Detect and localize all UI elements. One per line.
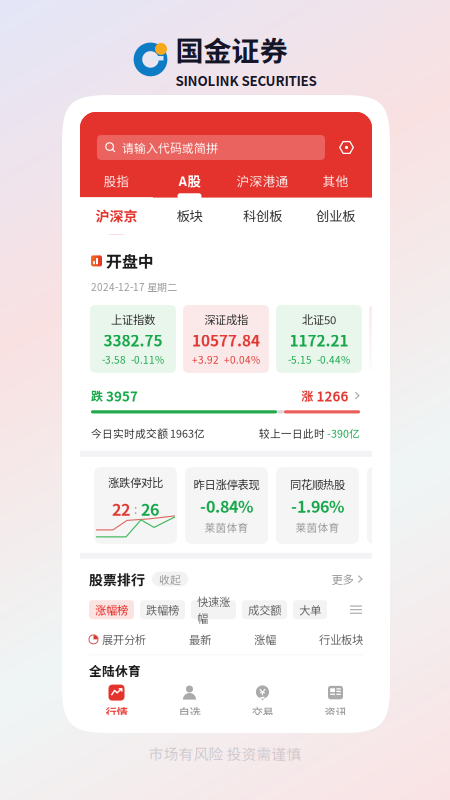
button[interactable]: 更多筛选 [349,603,363,617]
staticText: 涨幅榜 [95,601,128,618]
staticText: 上证指数 [111,311,155,328]
button[interactable]: 行情 [80,685,153,720]
staticText: -1.96% [291,494,344,517]
button[interactable]: 跌幅榜 [140,600,185,619]
staticText: +0.04% [224,352,260,367]
staticText: 26 [141,497,159,520]
staticText: 股指 [103,171,129,190]
button[interactable]: 更多 [331,571,363,587]
staticText: 2024-12-17 星期二 [91,279,177,294]
button[interactable]: 请输入代码或简拼 [97,135,325,160]
button[interactable]: 快速涨幅 [191,600,236,619]
staticText: -0.44% [317,352,350,367]
staticText: 成交额 [248,601,281,618]
staticText: 国金证券 [175,29,287,69]
button[interactable]: 深证成指 [183,305,269,373]
staticText: 创业板 [316,206,355,225]
button[interactable]: 涨幅榜 [89,600,134,619]
staticText: 莱茵体育 [204,519,248,535]
staticText: 涨跌停对比 [108,474,163,490]
staticText: 1266 [313,386,348,405]
staticText: 较上一日此时 [259,425,327,441]
button[interactable]: 同花顺热股 [276,467,359,544]
staticText: 请输入代码或简拼 [122,139,218,156]
button[interactable]: 其他 [299,168,372,199]
staticText: A股 [178,171,200,190]
button[interactable]: 交易 [226,685,299,720]
staticText: : [134,500,137,518]
button[interactable]: 资讯 [299,685,372,720]
button[interactable]: 自选 [153,685,226,720]
staticText: 行业板块 [319,631,363,648]
staticText: 10577.84 [192,329,260,351]
staticText: 3957 [103,386,138,405]
button[interactable]: 板块 [153,198,226,236]
staticText: 更多 [331,571,353,587]
button[interactable]: 设置 [334,135,359,160]
staticText: 昨日涨停表现 [193,476,259,492]
staticText: 股票排行 [89,569,145,589]
staticText: 市场有风险 投资需谨慎 [148,743,301,764]
staticText: 沪深港通 [236,171,288,190]
button[interactable]: A股 [153,168,226,199]
staticText: -5.15 [288,352,312,367]
button[interactable]: 创业板 [299,198,372,236]
staticText: 跌幅榜 [146,601,179,618]
staticText: 行情 [105,704,127,720]
button[interactable]: 北证50 [276,305,362,373]
staticText: -0.84% [200,494,253,517]
staticText: 收起 [159,571,181,587]
staticText: 22 [112,497,130,520]
staticText: 北证50 [302,311,336,328]
staticText: -390亿 [327,425,360,441]
button[interactable]: 展开分析 [89,631,146,648]
staticText: 沪深京 [95,205,137,225]
staticText: 同花顺热股 [290,476,345,492]
staticText: 快速涨幅 [197,593,230,626]
button[interactable]: 成交额 [242,600,287,619]
staticText: 3382.75 [103,329,162,351]
staticText: 莱茵体育 [295,519,339,535]
staticText: 开盘中 [106,249,154,272]
staticText: 深证成指 [204,311,248,328]
button[interactable]: 收起 [152,571,188,586]
button[interactable]: 昨日涨停表现 [185,467,268,544]
button[interactable]: 大单 [293,600,327,619]
staticText: 跌 [91,387,103,404]
staticText: 展开分析 [102,631,146,648]
staticText: -0.11% [131,352,164,367]
button[interactable]: 沪深港通 [226,168,299,199]
button[interactable]: 科创板 [226,198,299,236]
button[interactable]: 股指 [80,168,153,199]
button[interactable]: 沪深京 [80,197,153,236]
staticText: 今日实时成交额 1963亿 [91,425,205,441]
staticText: SINOLINK SECURITIES [175,70,316,90]
button[interactable]: 上证指数 [90,305,176,373]
staticText: -3.58 [102,352,126,367]
staticText: 其他 [322,171,348,190]
staticText: 自选 [178,704,200,720]
staticText: 交易 [251,704,273,720]
staticText: 最新 [189,631,211,648]
staticText: 1172.21 [289,329,348,351]
staticText: +3.92 [192,352,219,367]
staticText: 全陆休育 [89,661,141,680]
staticText: 大单 [299,601,321,618]
button[interactable]: 涨跌停对比 [94,467,177,544]
staticText: 涨 [301,387,313,404]
staticText: 科创板 [243,206,282,225]
staticText: 板块 [176,206,202,225]
staticText: 资讯 [324,704,346,720]
staticText: 涨幅 [254,631,276,648]
